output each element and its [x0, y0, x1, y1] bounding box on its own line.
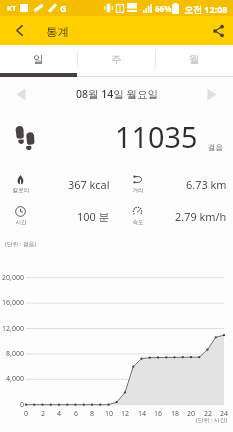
staticText: 칼로리 — [11, 187, 31, 194]
staticText: 367 kcal — [68, 177, 110, 192]
staticText: 22 — [201, 409, 215, 419]
staticText: 2 — [36, 409, 50, 419]
staticText: 08월 14일 월요일 — [76, 87, 158, 101]
button[interactable]: Share — [207, 16, 233, 45]
staticText: 4 — [52, 409, 66, 419]
staticText: 시간 — [11, 219, 31, 226]
staticText: 거리 — [128, 187, 148, 194]
button[interactable]: 일 — [0, 45, 77, 77]
staticText: 월 — [189, 53, 200, 66]
staticText: (단위 : 시간) — [196, 416, 228, 424]
staticText: 16,000 — [0, 298, 24, 308]
button[interactable]: Next day — [201, 83, 223, 105]
staticText: 18 — [168, 409, 182, 419]
staticText: 일 — [33, 53, 44, 66]
staticText: 14 — [135, 409, 149, 419]
staticText: G — [60, 2, 67, 14]
staticText: KT — [7, 3, 17, 13]
button[interactable]: 월 — [155, 45, 233, 77]
staticText: 10 — [102, 409, 116, 419]
staticText: 4,000 — [0, 374, 24, 384]
staticText: 0 — [0, 400, 24, 410]
button[interactable]: Back — [0, 16, 30, 45]
staticText: 20 — [184, 409, 198, 419]
staticText: 통계 — [46, 25, 69, 39]
staticText: 100 분 — [77, 209, 110, 224]
staticText: 12 — [118, 409, 132, 419]
button[interactable]: 시간 — [0, 200, 116, 232]
staticText: 6 — [69, 409, 83, 419]
staticText: 20,000 — [0, 273, 24, 283]
staticText: (단위 : 걸음) — [5, 240, 37, 248]
staticText: 6.73 km — [186, 177, 227, 192]
staticText: 24 — [217, 409, 231, 419]
staticText: 16 — [151, 409, 165, 419]
staticText: 12,000 — [0, 324, 24, 334]
button[interactable]: 속도 — [117, 200, 233, 232]
button[interactable]: 칼로리 — [0, 168, 116, 200]
staticText: 주 — [111, 53, 122, 66]
button[interactable]: 주 — [77, 45, 155, 77]
staticText: 속도 — [128, 219, 148, 226]
staticText: 8 — [85, 409, 99, 419]
button[interactable]: Previous day — [10, 83, 32, 105]
staticText: 66% — [155, 3, 172, 14]
staticText: 오전 12:08 — [184, 3, 228, 15]
button[interactable]: 거리 — [117, 168, 233, 200]
staticText: 2.79 km/h — [175, 209, 227, 224]
staticText: 11035 — [115, 117, 198, 156]
staticText: 8,000 — [0, 349, 24, 359]
staticText: 0 — [19, 409, 33, 419]
staticText: 걸음 — [208, 143, 223, 152]
